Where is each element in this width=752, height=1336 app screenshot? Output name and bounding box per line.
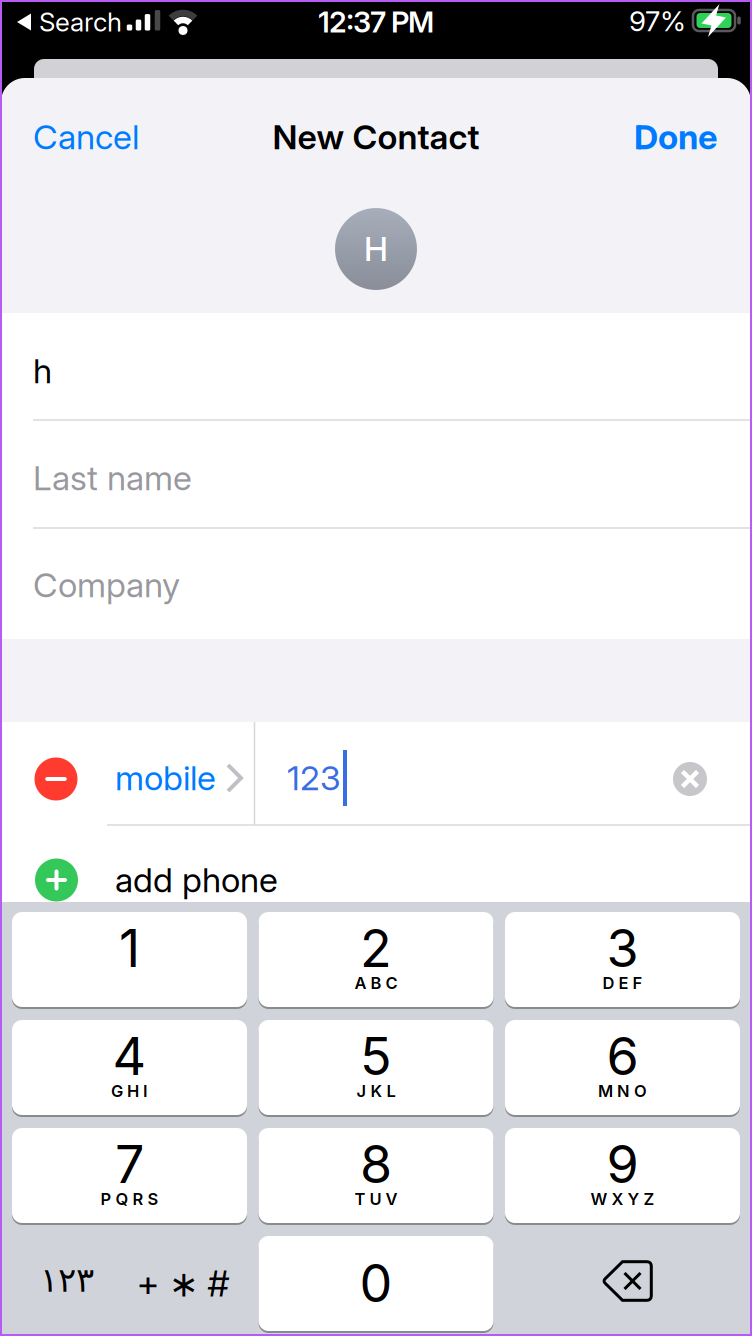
- button[interactable]: h: [33, 351, 433, 391]
- button[interactable]: mobile: [115, 758, 315, 798]
- button[interactable]: Back to Search: [17, 7, 177, 37]
- staticText: 6: [606, 1025, 638, 1087]
- staticText: ١٢٣: [40, 1261, 94, 1299]
- staticText: 1: [119, 917, 140, 979]
- staticText: 3: [606, 917, 638, 979]
- button[interactable]: Cancel: [33, 117, 193, 157]
- staticText: 8: [360, 1133, 392, 1195]
- button[interactable]: 4: [12, 1020, 247, 1115]
- button[interactable]: Symbols: [118, 1236, 248, 1331]
- button[interactable]: 7: [12, 1128, 247, 1223]
- staticText: W X Y Z: [590, 1189, 654, 1209]
- button[interactable]: Company: [33, 565, 433, 605]
- staticText: P Q R S: [100, 1189, 158, 1209]
- staticText: 5: [360, 1025, 392, 1087]
- button[interactable]: 0: [258, 1236, 493, 1331]
- button[interactable]: 5: [258, 1020, 493, 1115]
- button[interactable]: Numbers: [12, 1232, 122, 1327]
- staticText: H: [364, 229, 388, 268]
- staticText: 4: [112, 1025, 146, 1087]
- staticText: G H I: [111, 1081, 148, 1101]
- staticText: D E F: [602, 973, 642, 993]
- button[interactable]: add phone: [35, 858, 355, 901]
- staticText: A B C: [354, 973, 397, 993]
- button[interactable]: Clear text: [673, 762, 707, 796]
- staticText: J K L: [356, 1081, 395, 1101]
- staticText: add phone: [115, 860, 278, 900]
- staticText: Company: [33, 565, 180, 605]
- button[interactable]: 9: [505, 1128, 740, 1223]
- staticText: New Contact: [272, 117, 479, 157]
- button[interactable]: Done: [558, 117, 718, 157]
- staticText: h: [33, 351, 52, 391]
- staticText: Cancel: [33, 117, 139, 157]
- button[interactable]: Add Photo: [335, 208, 417, 290]
- staticText: Done: [634, 117, 718, 157]
- button[interactable]: 3: [505, 912, 740, 1007]
- button[interactable]: 2: [258, 912, 493, 1007]
- button[interactable]: 8: [258, 1128, 493, 1223]
- staticText: 123: [287, 758, 341, 798]
- button[interactable]: 123: [287, 758, 407, 798]
- staticText: 7: [115, 1133, 144, 1195]
- staticText: 9: [606, 1133, 638, 1195]
- staticText: 12:37 PM: [318, 5, 434, 39]
- staticText: 2: [360, 917, 392, 979]
- button[interactable]: 1: [12, 912, 247, 1007]
- staticText: mobile: [115, 758, 216, 798]
- button[interactable]: Last name: [33, 458, 433, 498]
- staticText: T U V: [354, 1189, 397, 1209]
- staticText: 97%: [629, 4, 686, 37]
- staticText: M N O: [598, 1081, 647, 1101]
- staticText: Last name: [33, 458, 192, 498]
- button[interactable]: 6: [505, 1020, 740, 1115]
- button[interactable]: Remove phone: [34, 757, 77, 800]
- button[interactable]: Delete: [600, 1261, 652, 1301]
- staticText: Search: [39, 7, 122, 37]
- staticText: 0: [359, 1252, 392, 1314]
- staticText: + ∗ #: [136, 1262, 229, 1305]
